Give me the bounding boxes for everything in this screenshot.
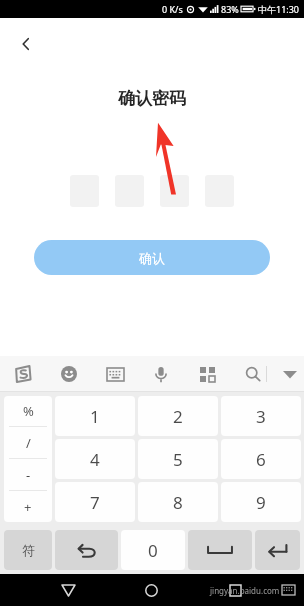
staticText: jingyan.baidu.com: [210, 585, 280, 596]
button[interactable]: %: [4, 396, 52, 522]
staticText: 9: [256, 491, 266, 514]
staticText: 2: [173, 405, 183, 428]
staticText: 6: [256, 448, 266, 471]
button[interactable]: 0: [121, 530, 185, 570]
button[interactable]: 9: [221, 482, 301, 522]
staticText: 0 K/s: [162, 3, 183, 15]
button[interactable]: Home: [136, 575, 166, 605]
button[interactable]: Back: [10, 28, 42, 60]
button[interactable]: Enter: [255, 530, 300, 570]
staticText: 确认密码: [0, 88, 304, 109]
button[interactable]: More apps: [194, 361, 220, 387]
button[interactable]: 3: [221, 396, 301, 436]
button[interactable]: 1: [55, 396, 135, 436]
staticText: 符: [22, 542, 35, 558]
button[interactable]: Password digit 3: [160, 175, 189, 207]
button[interactable]: 8: [138, 482, 218, 522]
button[interactable]: 5: [138, 439, 218, 479]
button[interactable]: Emoji: [56, 361, 82, 387]
button[interactable]: 6: [221, 439, 301, 479]
button[interactable]: 4: [55, 439, 135, 479]
staticText: 0: [148, 539, 158, 562]
button[interactable]: 确认: [34, 240, 270, 275]
button[interactable]: 2: [138, 396, 218, 436]
button[interactable]: Undo: [55, 530, 118, 570]
staticText: /: [26, 434, 31, 452]
staticText: 7: [90, 491, 100, 514]
staticText: %: [23, 402, 34, 420]
staticText: 1: [90, 405, 100, 428]
staticText: 83%: [221, 3, 239, 15]
staticText: +: [24, 498, 32, 516]
button[interactable]: 符: [4, 530, 52, 570]
staticText: 8: [173, 491, 183, 514]
button[interactable]: Keyboard: [102, 361, 128, 387]
button[interactable]: Voice input: [148, 361, 174, 387]
button[interactable]: Back: [53, 575, 83, 605]
staticText: 中午11:30: [258, 3, 300, 15]
button[interactable]: Recent apps: [220, 575, 250, 605]
button[interactable]: Sogou input: [10, 361, 36, 387]
staticText: 4: [90, 448, 100, 471]
staticText: 5: [173, 448, 183, 471]
staticText: 确认: [139, 250, 165, 266]
staticText: 3: [256, 405, 266, 428]
button[interactable]: Space: [188, 530, 252, 570]
staticText: -: [26, 466, 31, 484]
button[interactable]: Hide keyboard: [277, 361, 303, 387]
button[interactable]: Search: [240, 361, 266, 387]
other: Keyboard active: [278, 580, 298, 600]
button[interactable]: 7: [55, 482, 135, 522]
